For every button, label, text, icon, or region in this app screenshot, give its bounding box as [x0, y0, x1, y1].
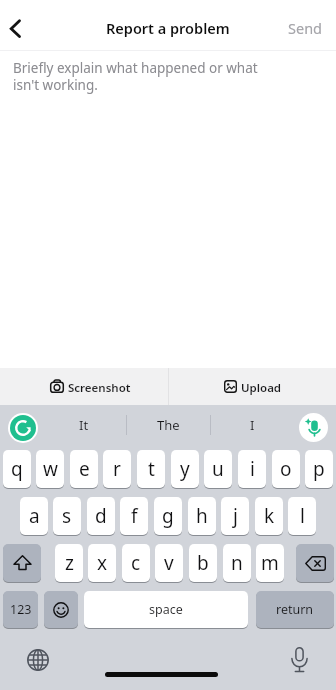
staticText: o [280, 456, 292, 482]
button[interactable]: d [87, 497, 115, 535]
staticText: h [196, 503, 208, 529]
staticText: b [197, 550, 209, 576]
button[interactable]: z [55, 544, 83, 582]
staticText: The [157, 416, 180, 434]
button[interactable]: j [221, 497, 249, 535]
staticText: d [95, 503, 107, 529]
button[interactable] [299, 413, 328, 442]
button[interactable]: t [137, 450, 165, 488]
staticText: Report a problem [106, 18, 230, 38]
button[interactable]: a [20, 497, 48, 535]
button[interactable]: y [171, 450, 199, 488]
staticText: m [261, 550, 279, 576]
button[interactable]: m [256, 544, 284, 582]
button[interactable]: return [256, 591, 334, 628]
staticText: Screenshot [68, 380, 131, 396]
button[interactable]: The [126, 407, 210, 443]
staticText: p [313, 456, 325, 482]
staticText: u [212, 456, 224, 482]
staticText: 123 [10, 601, 32, 618]
button[interactable]: f [120, 497, 148, 535]
button[interactable]: Screenshot [0, 368, 168, 405]
staticText: v [164, 550, 174, 576]
staticText: z [65, 550, 74, 576]
staticText: q [11, 456, 23, 482]
button[interactable]: It [42, 407, 126, 443]
button[interactable]: o [272, 450, 300, 488]
button[interactable] [44, 591, 78, 628]
button[interactable] [8, 413, 38, 443]
button[interactable]: n [223, 544, 251, 582]
staticText: n [231, 550, 243, 576]
button[interactable]: x [88, 544, 116, 582]
staticText: j [233, 503, 238, 529]
button[interactable]: l [288, 497, 316, 535]
staticText: i [250, 456, 255, 482]
button[interactable]: Upload [168, 368, 336, 405]
staticText: return [276, 601, 314, 618]
staticText: a [29, 503, 40, 529]
staticText: Upload [241, 380, 282, 396]
staticText: It [79, 416, 89, 434]
button[interactable]: e [70, 450, 98, 488]
staticText: Send [288, 18, 323, 38]
button[interactable]: q [3, 450, 31, 488]
staticText: w [43, 456, 58, 482]
button[interactable]: k [255, 497, 283, 535]
button[interactable]: c [122, 544, 150, 582]
staticText: space [149, 601, 183, 618]
button[interactable] [3, 544, 41, 582]
staticText: e [79, 456, 90, 482]
staticText: r [113, 456, 121, 482]
button[interactable]: 123 [3, 591, 38, 628]
button[interactable]: Send [288, 18, 323, 38]
button[interactable]: p [305, 450, 333, 488]
button[interactable]: w [36, 450, 64, 488]
button[interactable]: v [155, 544, 183, 582]
button[interactable]: i [238, 450, 266, 488]
button[interactable]: h [188, 497, 216, 535]
button[interactable]: b [189, 544, 217, 582]
staticText: Briefly explain what happened or what is… [13, 59, 258, 94]
staticText: k [264, 503, 275, 529]
button[interactable] [0, 12, 32, 46]
button[interactable] [296, 544, 334, 582]
staticText: y [180, 456, 190, 482]
staticText: x [97, 550, 108, 576]
staticText: f [131, 503, 138, 529]
staticText: s [62, 503, 72, 529]
staticText: I [250, 416, 255, 434]
button[interactable]: I [210, 407, 294, 443]
button[interactable]: space [84, 591, 248, 628]
button[interactable]: r [103, 450, 131, 488]
staticText: l [300, 503, 305, 529]
button[interactable]: g [154, 497, 182, 535]
staticText: c [131, 550, 141, 576]
staticText: g [162, 503, 174, 529]
button[interactable]: u [204, 450, 232, 488]
staticText: t [148, 456, 155, 482]
button[interactable]: s [53, 497, 81, 535]
